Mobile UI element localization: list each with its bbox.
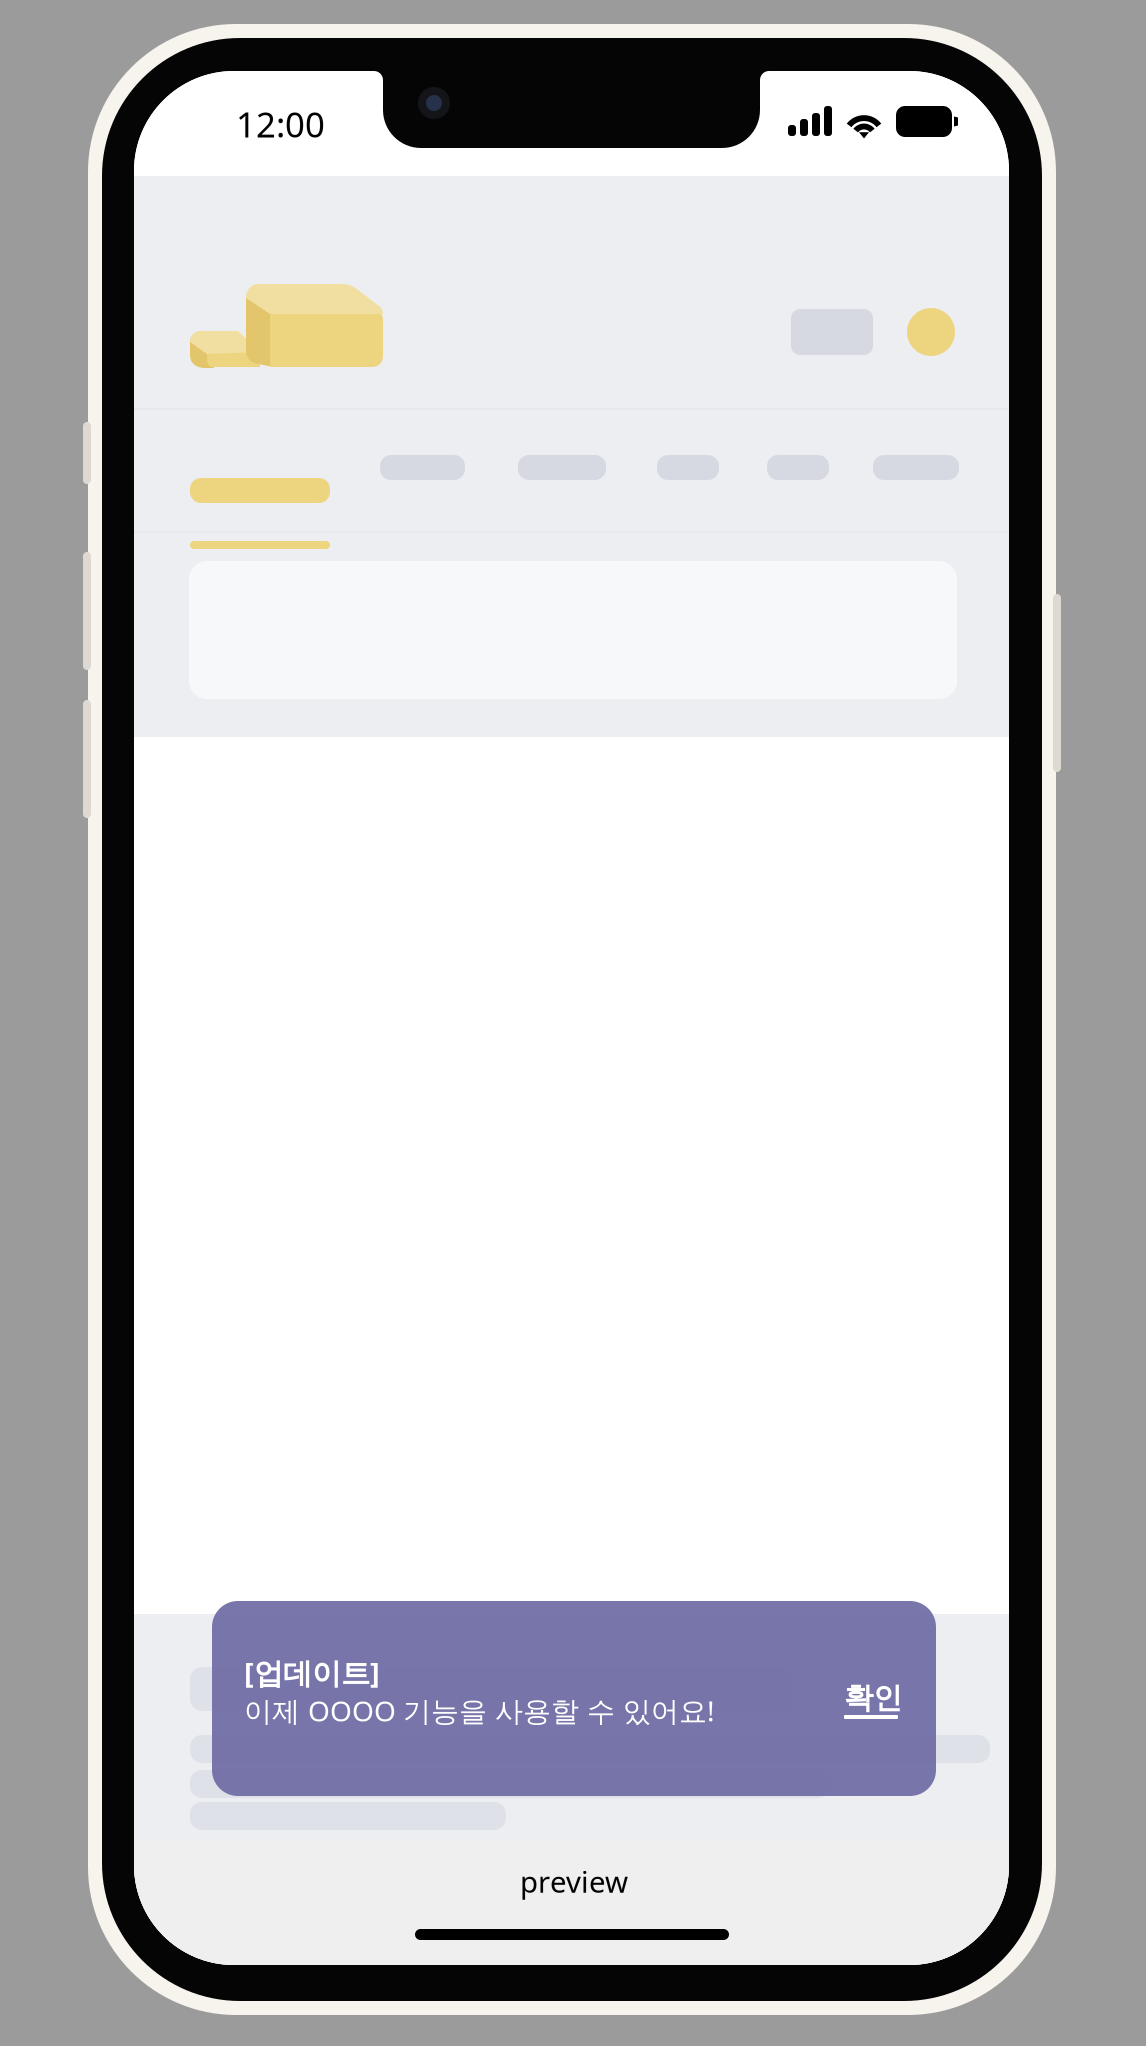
button[interactable]: [업데이트] bbox=[212, 1601, 936, 1796]
staticText: 확인 bbox=[844, 1680, 902, 1716]
button[interactable]: Tab 1 bbox=[190, 455, 330, 526]
button[interactable]: Tab bbox=[380, 455, 465, 480]
button[interactable]: Profile bbox=[907, 308, 955, 356]
button[interactable]: Tab bbox=[657, 455, 719, 480]
button[interactable]: Tab bbox=[518, 455, 606, 480]
staticText: 이제 OOOO 기능을 사용할 수 있어요! bbox=[244, 1692, 715, 1729]
button[interactable]: Tab bbox=[873, 455, 959, 480]
staticText: 12:00 bbox=[236, 101, 325, 147]
button[interactable]: Tab bbox=[767, 455, 829, 480]
staticText: [업데이트] bbox=[244, 1653, 380, 1692]
staticText: preview bbox=[520, 1862, 628, 1901]
